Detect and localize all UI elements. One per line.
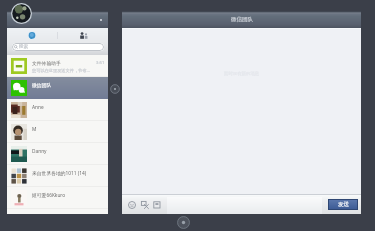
button[interactable]: Screenshot bbox=[140, 200, 150, 210]
button[interactable]: Home bbox=[177, 216, 190, 229]
staticText: 3:51 bbox=[96, 60, 105, 66]
staticText: 搜索 bbox=[19, 44, 28, 50]
button[interactable]: Emoji bbox=[127, 200, 137, 210]
staticText: 来自世界各地的1011 (14) bbox=[32, 170, 87, 177]
staticText: 微信团队 bbox=[32, 82, 52, 88]
staticText: 发送 bbox=[338, 201, 349, 208]
staticText: Anne bbox=[32, 104, 44, 111]
button[interactable]: Anne bbox=[7, 99, 108, 121]
staticText: 姐可爱66Kkuro bbox=[32, 192, 66, 199]
button[interactable]: Resize bbox=[110, 84, 120, 94]
button[interactable]: 来自世界各地的1011 (14) bbox=[7, 165, 108, 187]
staticText: M bbox=[32, 126, 37, 133]
button[interactable]: 微信团队 bbox=[7, 77, 108, 99]
button[interactable] bbox=[167, 197, 322, 214]
button[interactable]: Profile bbox=[11, 3, 32, 24]
button[interactable]: Contacts bbox=[58, 28, 108, 43]
button[interactable]: Danny bbox=[7, 143, 108, 165]
button[interactable]: 文件传输助手 bbox=[7, 55, 108, 77]
button[interactable]: 姐可爱66Kkuro bbox=[7, 187, 108, 209]
staticText: 您可以在这里发送文件，节省… bbox=[32, 68, 90, 74]
button[interactable]: Send file bbox=[152, 200, 162, 210]
button[interactable]: Chats bbox=[7, 28, 57, 43]
staticText: 文件传输助手 bbox=[32, 60, 61, 66]
button[interactable]: 发送 bbox=[328, 199, 358, 210]
staticText: 微信团队 bbox=[231, 16, 253, 23]
staticText: 暂时没有新的消息 bbox=[224, 71, 260, 77]
button[interactable]: 搜索 bbox=[12, 43, 104, 51]
staticText: Danny bbox=[32, 148, 47, 155]
button[interactable]: M bbox=[7, 121, 108, 143]
